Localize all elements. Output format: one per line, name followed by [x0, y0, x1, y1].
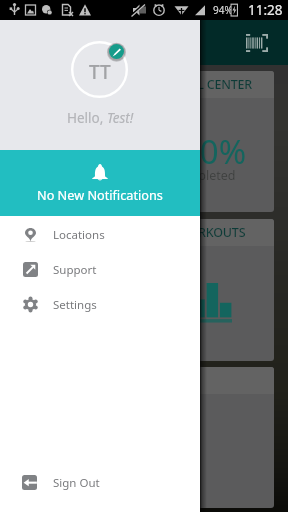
button[interactable]: Locations: [0, 217, 200, 252]
button[interactable]: Support: [0, 252, 200, 287]
staticText: Settings: [53, 297, 97, 313]
staticText: WORKOUTS: [177, 224, 246, 241]
button[interactable]: No New Notifications: [0, 150, 200, 216]
button[interactable]: GOAL CENTER: [14, 71, 274, 212]
staticText: 11:28: [248, 1, 283, 19]
staticText: Hello, Test!: [67, 109, 134, 127]
staticText: Locations: [53, 227, 105, 243]
button[interactable]: Edit profile: [107, 42, 126, 61]
button[interactable]: Sign Out: [0, 465, 200, 500]
button[interactable]: Scan barcode: [240, 26, 274, 60]
staticText: Sign Out: [53, 475, 100, 491]
staticText: TT: [89, 59, 111, 85]
button[interactable]: [14, 367, 274, 508]
button[interactable]: WORKOUTS: [14, 219, 274, 361]
staticText: completed: [173, 167, 236, 184]
staticText: 100%: [162, 129, 247, 174]
staticText: GOAL CENTER: [171, 76, 253, 93]
button[interactable]: Settings: [0, 287, 200, 322]
staticText: No New Notifications: [37, 186, 163, 203]
staticText: 94%: [213, 3, 233, 17]
staticText: Support: [53, 262, 97, 278]
